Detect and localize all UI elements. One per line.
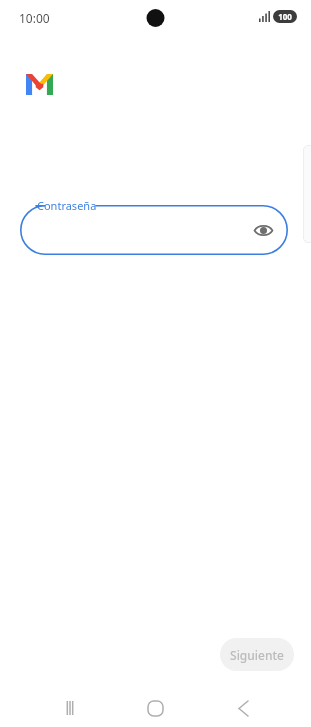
button[interactable]: Siguiente xyxy=(220,638,294,671)
staticText: Siguiente xyxy=(230,647,284,663)
button[interactable]: Home xyxy=(137,690,173,726)
button[interactable]: Show password xyxy=(248,215,278,245)
button[interactable]: Recent apps xyxy=(52,690,88,726)
button[interactable]: Contraseña xyxy=(20,205,288,255)
staticText: 100 xyxy=(278,11,292,22)
staticText: 10:00 xyxy=(19,10,50,26)
staticText: Contraseña xyxy=(37,198,97,213)
button[interactable]: Back xyxy=(225,690,261,726)
other: Gmail xyxy=(26,74,53,95)
